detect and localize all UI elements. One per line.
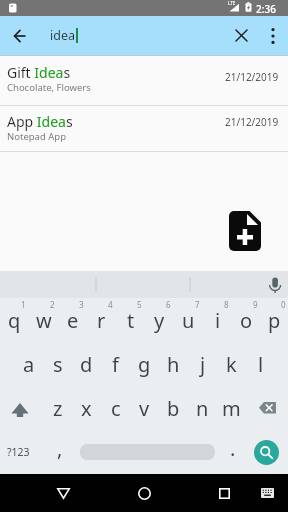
staticText: s <box>53 351 63 378</box>
button[interactable] <box>205 474 243 512</box>
button[interactable]: f <box>101 342 130 386</box>
staticText: 5 <box>137 299 142 310</box>
button[interactable]: a <box>14 342 43 386</box>
button[interactable]: q <box>0 298 29 342</box>
staticText: j <box>200 351 206 378</box>
staticText: x <box>81 395 92 422</box>
staticText: y <box>154 307 165 334</box>
button[interactable]: b <box>159 386 188 430</box>
button[interactable] <box>224 18 258 53</box>
staticText: ?123 <box>7 445 30 459</box>
staticText: Notepad App <box>7 130 66 143</box>
staticText: q <box>8 307 21 334</box>
button[interactable] <box>125 474 163 512</box>
staticText: c <box>111 395 121 422</box>
button[interactable]: k <box>217 342 246 386</box>
staticText: LTE <box>228 0 236 6</box>
staticText: idea <box>50 27 75 44</box>
staticText: 1 <box>21 299 26 310</box>
staticText: m <box>222 395 241 422</box>
staticText: r <box>97 307 106 334</box>
button[interactable]: e <box>58 298 87 342</box>
button[interactable] <box>44 474 82 512</box>
staticText: w <box>36 307 52 334</box>
button[interactable]: y <box>145 298 174 342</box>
staticText: Chocolate, Flowers <box>7 81 91 94</box>
button[interactable]: App Ideas <box>0 106 288 151</box>
staticText: 4 <box>108 299 113 310</box>
staticText: k <box>226 351 237 378</box>
staticText: n <box>196 395 209 422</box>
button[interactable]: , <box>43 430 72 474</box>
staticText: 2 <box>50 299 55 310</box>
staticText: 9 <box>253 299 258 310</box>
button[interactable]: c <box>101 386 130 430</box>
button[interactable]: u <box>174 298 203 342</box>
staticText: Gift Ideas <box>7 63 71 82</box>
button[interactable]: r <box>87 298 116 342</box>
button[interactable]: ?123 <box>0 430 43 474</box>
button[interactable]: w <box>29 298 58 342</box>
button[interactable] <box>0 386 43 430</box>
button[interactable]: o <box>232 298 261 342</box>
button[interactable]: x <box>72 386 101 430</box>
button[interactable] <box>221 207 269 255</box>
button[interactable]: j <box>188 342 217 386</box>
staticText: 21/12/2019 <box>225 115 279 129</box>
button[interactable]: m <box>217 386 246 430</box>
staticText: a <box>23 351 35 378</box>
button[interactable]: g <box>130 342 159 386</box>
staticText: z <box>53 395 63 422</box>
button[interactable] <box>245 430 288 474</box>
staticText: f <box>112 351 119 378</box>
staticText: 8 <box>224 299 229 310</box>
button[interactable]: Gift Ideas <box>0 55 288 105</box>
button[interactable]: s <box>43 342 72 386</box>
staticText: 0 <box>281 299 286 310</box>
staticText: v <box>139 395 150 422</box>
staticText: 6 <box>166 299 171 310</box>
staticText: e <box>67 307 79 334</box>
button[interactable] <box>261 271 288 298</box>
button[interactable]: z <box>43 386 72 430</box>
button[interactable]: t <box>116 298 145 342</box>
button[interactable] <box>0 16 39 55</box>
button[interactable]: n <box>188 386 217 430</box>
staticText: 3 <box>79 299 84 310</box>
button[interactable]: i <box>203 298 232 342</box>
staticText: 2:36 <box>256 2 276 16</box>
button[interactable] <box>261 18 285 53</box>
staticText: d <box>80 351 93 378</box>
staticText: , <box>57 435 63 462</box>
staticText: h <box>167 351 180 378</box>
staticText: p <box>268 307 281 334</box>
button[interactable] <box>246 386 288 430</box>
staticText: t <box>127 307 135 334</box>
staticText: g <box>138 351 151 378</box>
button[interactable] <box>252 474 282 512</box>
staticText: 7 <box>195 299 200 310</box>
button[interactable]: p <box>261 298 288 342</box>
staticText: u <box>182 307 195 334</box>
button[interactable]: v <box>130 386 159 430</box>
button[interactable]: d <box>72 342 101 386</box>
staticText: o <box>240 307 253 334</box>
staticText: App Ideas <box>7 112 73 131</box>
staticText: b <box>167 395 180 422</box>
button[interactable]: h <box>159 342 188 386</box>
staticText: l <box>258 351 264 378</box>
staticText: i <box>215 307 221 334</box>
staticText: 21/12/2019 <box>225 70 279 84</box>
button[interactable]: l <box>246 342 275 386</box>
staticText: . <box>230 435 236 462</box>
button[interactable]: . <box>216 430 245 474</box>
button[interactable] <box>72 430 216 474</box>
